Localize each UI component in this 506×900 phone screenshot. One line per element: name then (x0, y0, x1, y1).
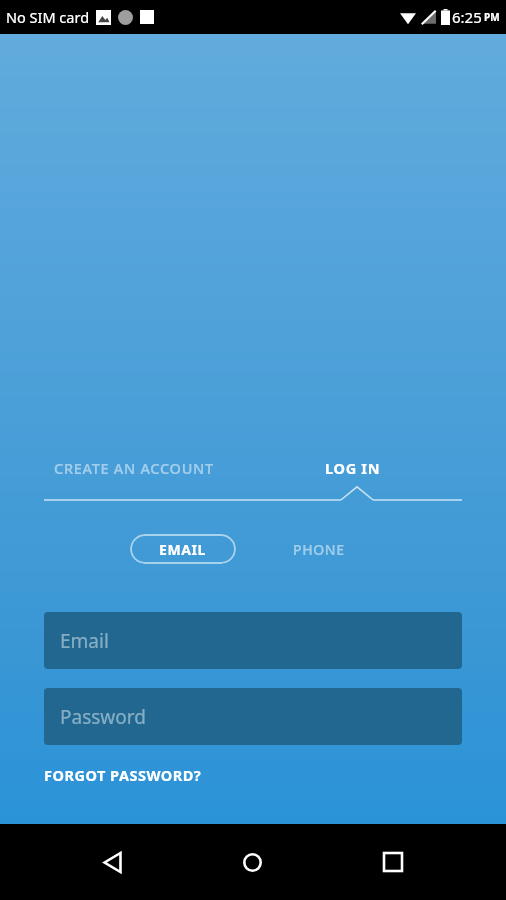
staticText: LOG IN (325, 458, 381, 478)
staticText: PM (484, 10, 500, 24)
button[interactable]: PHONE (266, 534, 372, 564)
button[interactable]: LOG IN (253, 440, 506, 496)
button[interactable]: Email (44, 612, 462, 669)
staticText: 6:25 (452, 7, 482, 27)
button[interactable]: Home (224, 834, 280, 890)
staticText: FORGOT PASSWORD? (44, 765, 202, 785)
button[interactable]: Password (44, 688, 462, 745)
staticText: PHONE (293, 540, 345, 559)
button[interactable]: Back (84, 834, 140, 890)
button[interactable]: EMAIL (130, 534, 236, 564)
staticText: EMAIL (159, 540, 207, 559)
button[interactable]: CREATE AN ACCOUNT (0, 440, 253, 496)
staticText: Email (60, 628, 109, 654)
button[interactable]: Recent apps (365, 834, 421, 890)
staticText: No SIM card (6, 7, 90, 27)
staticText: Password (60, 704, 146, 730)
staticText: CREATE AN ACCOUNT (54, 458, 214, 478)
button[interactable]: FORGOT PASSWORD? (44, 758, 202, 792)
